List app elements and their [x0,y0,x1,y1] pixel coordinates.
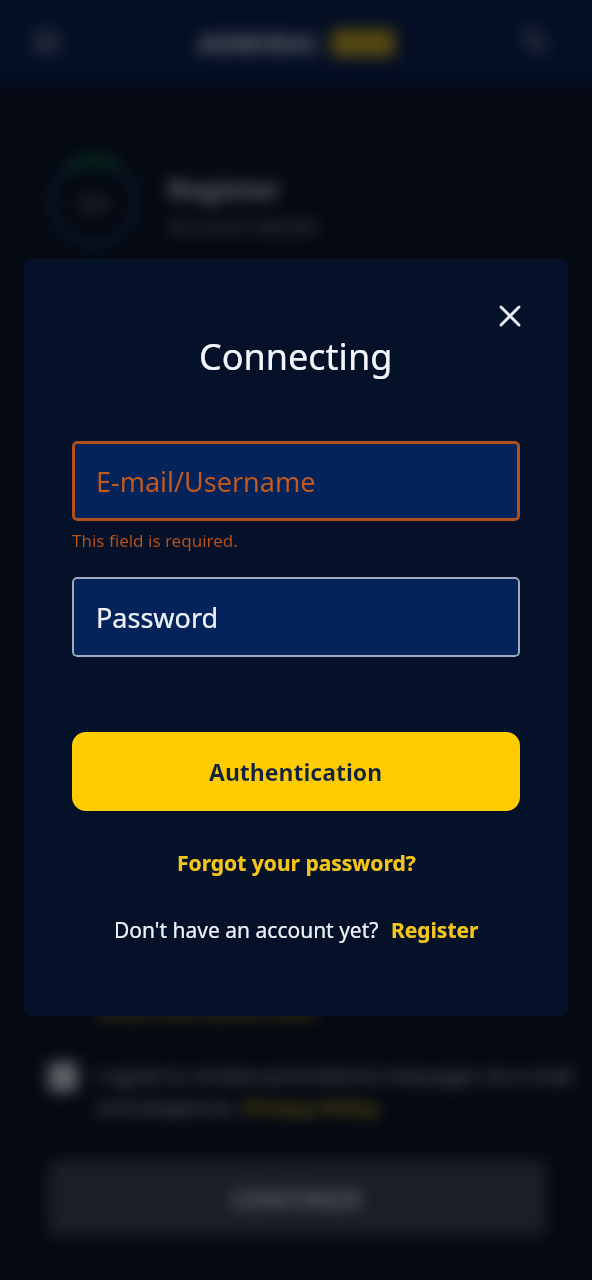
button[interactable] [490,296,530,336]
staticText: 1/4 [76,190,107,217]
staticText: Register [168,170,281,207]
staticText: Account details [168,212,319,241]
button[interactable]: Forgot your password? [177,849,416,878]
staticText: Don't have an account yet? [114,916,379,945]
button[interactable]: Do you have a promo code? [96,1000,318,1023]
staticText: Password [96,599,219,636]
button[interactable]: E-mail/Username [72,441,520,521]
button[interactable] [516,22,556,62]
staticText: and telephone. [96,1094,243,1121]
button[interactable] [48,1062,78,1092]
staticText: Connecting [199,332,393,381]
button[interactable]: Register [391,916,479,945]
staticText: This field is required. [72,529,238,552]
button[interactable] [26,22,66,62]
button[interactable]: CONTINUE [48,1160,546,1236]
staticText: E-mail/Username [96,463,316,500]
staticText: ADMIRAL [198,25,321,60]
staticText: Authentication [209,756,383,787]
button[interactable]: Privacy Policy [243,1094,380,1121]
button[interactable]: Authentication [72,732,520,811]
button[interactable]: Password [72,577,520,657]
staticText: CONTINUE [232,1183,363,1214]
staticText: I agree to receive promotional messages … [96,1062,574,1089]
